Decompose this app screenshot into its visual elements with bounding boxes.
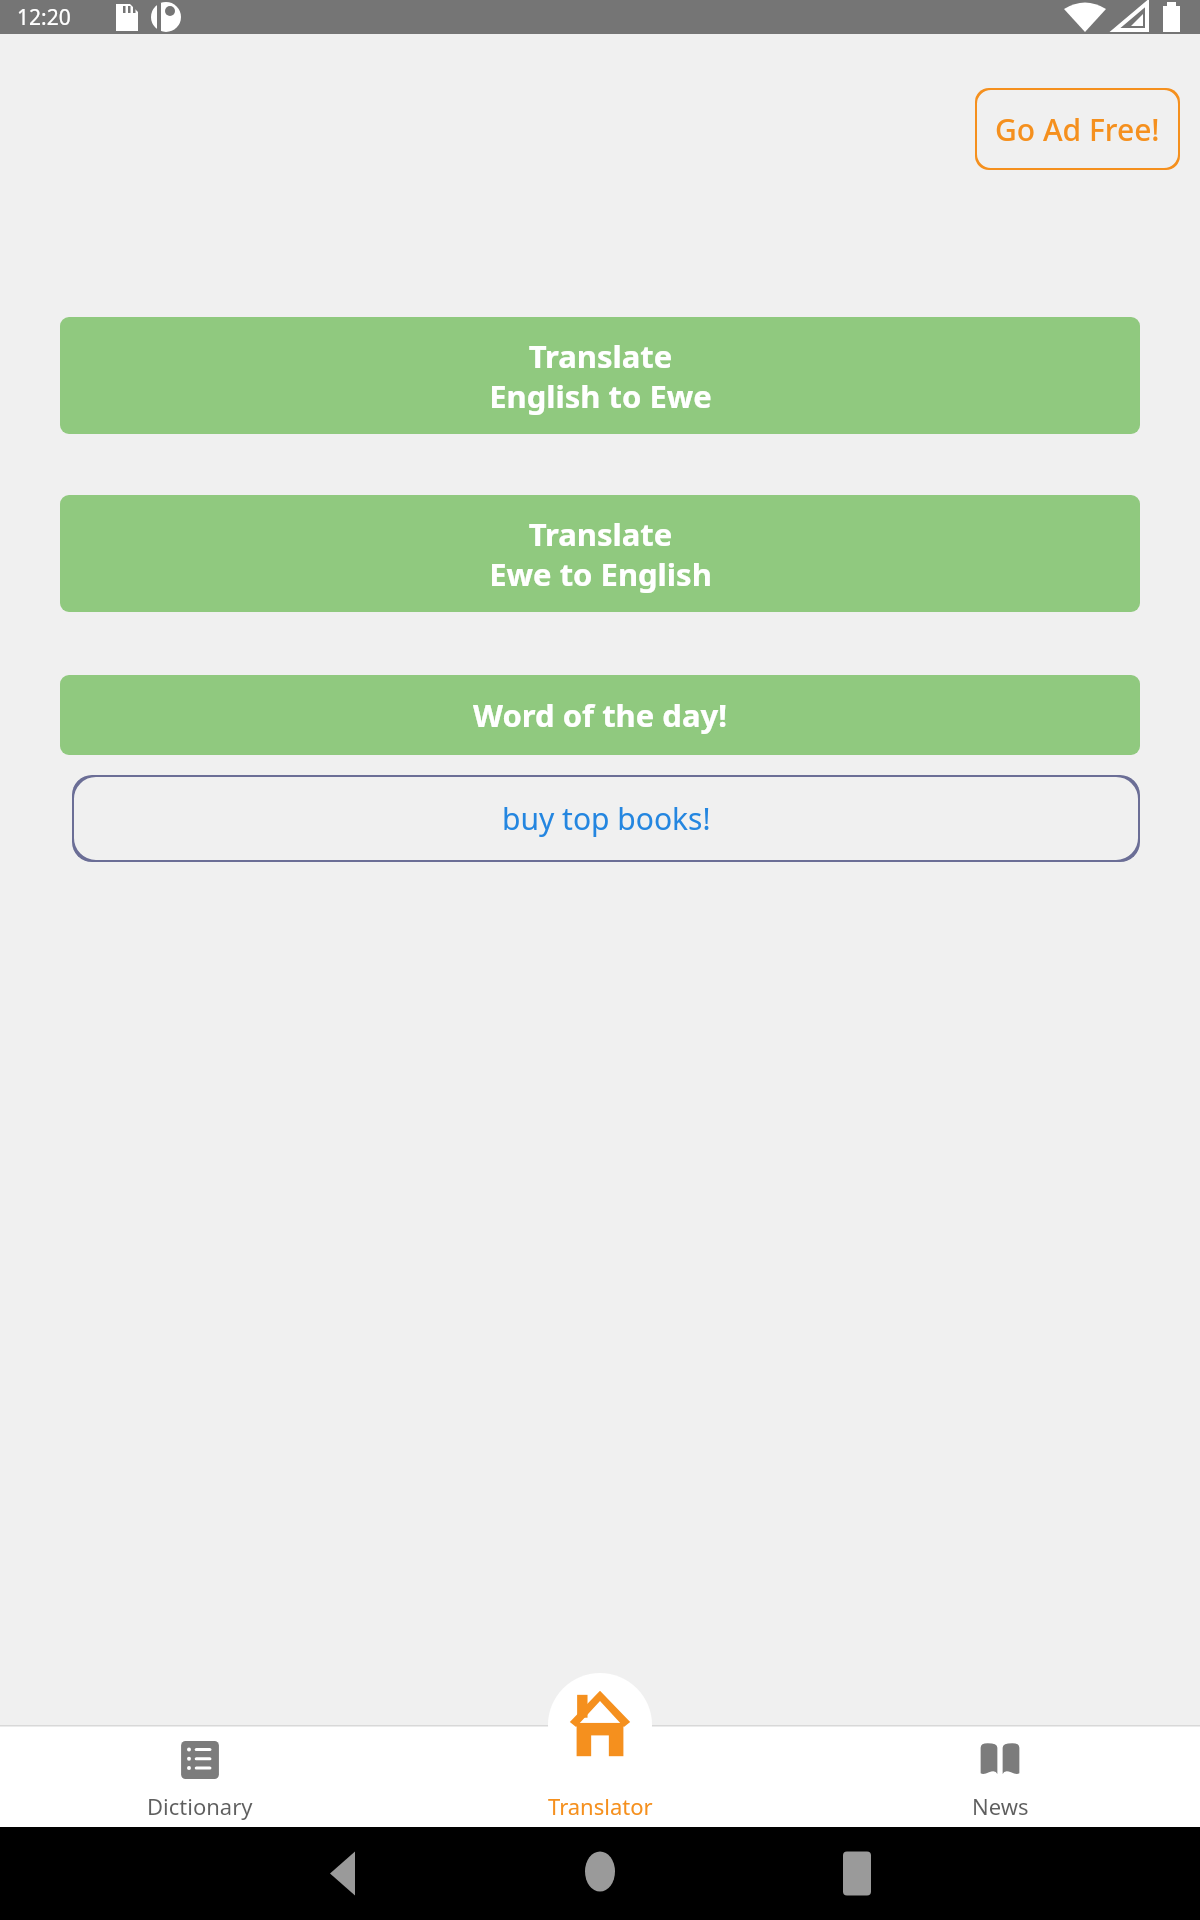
staticText: Word of the day!: [473, 694, 727, 736]
staticText: Go Ad Free!: [995, 109, 1160, 150]
button[interactable]: Translator: [400, 1725, 800, 1827]
button[interactable]: Translate Ewe to English: [60, 495, 1140, 612]
button[interactable]: Go Ad Free!: [975, 88, 1180, 170]
button[interactable]: Dictionary: [0, 1725, 400, 1827]
staticText: News: [972, 1791, 1029, 1821]
staticText: Translator: [548, 1791, 653, 1821]
staticText: 12:20: [17, 3, 71, 32]
button[interactable]: buy top books!: [72, 775, 1140, 862]
staticText: Dictionary: [147, 1791, 253, 1821]
button[interactable]: Word of the day!: [60, 675, 1140, 755]
staticText: buy top books!: [502, 798, 711, 839]
button[interactable]: Translator: [548, 1673, 652, 1777]
button[interactable]: Translate English to Ewe: [60, 317, 1140, 434]
staticText: Translate English to Ewe: [489, 335, 712, 417]
button[interactable]: News: [800, 1725, 1200, 1827]
staticText: Translate Ewe to English: [489, 513, 712, 595]
